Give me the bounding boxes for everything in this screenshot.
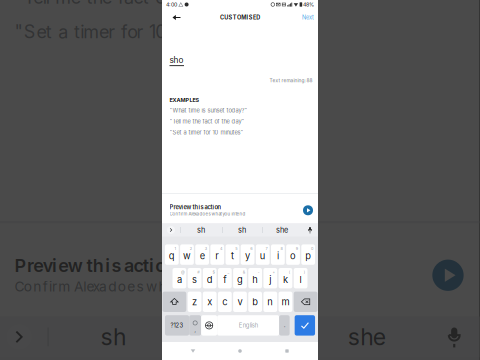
button[interactable]: 3 <box>195 244 209 265</box>
button[interactable]: - <box>248 268 262 288</box>
staticText: b <box>252 296 258 307</box>
staticText: x <box>207 296 212 307</box>
staticText: she <box>276 226 288 234</box>
button[interactable]: & <box>233 268 247 288</box>
button[interactable]: Back <box>166 9 187 26</box>
button[interactable]: m <box>279 292 292 312</box>
button[interactable]: sh <box>222 223 262 236</box>
staticText: d <box>207 274 213 285</box>
staticText: 5 <box>235 246 237 251</box>
staticText: EXAMPLES <box>169 97 199 103</box>
button[interactable]: n <box>263 292 277 312</box>
staticText: 4:00 <box>166 1 177 8</box>
staticText: ( <box>289 270 290 274</box>
staticText: @ <box>181 270 185 274</box>
button[interactable]: Symbols <box>165 315 189 336</box>
button[interactable]: 4 <box>210 244 224 265</box>
staticText: o <box>290 250 296 262</box>
staticText: w <box>183 250 191 262</box>
staticText: "Tell me the fact of the day" <box>169 118 244 125</box>
staticText: & <box>243 270 245 274</box>
staticText: 3 <box>205 246 207 251</box>
staticText: j <box>269 274 271 285</box>
button[interactable]: Next <box>294 9 314 26</box>
staticText: s <box>192 274 197 285</box>
button[interactable]: # <box>188 268 201 288</box>
staticText: a <box>177 274 182 285</box>
staticText: Preview this action <box>169 204 221 211</box>
staticText: c <box>222 296 227 307</box>
button[interactable]: . <box>279 315 290 336</box>
button[interactable]: + <box>263 268 277 288</box>
button[interactable]: Voice input <box>302 223 318 236</box>
button[interactable]: Recent apps <box>271 342 303 360</box>
staticText: _ <box>228 270 230 274</box>
staticText: t <box>231 250 234 262</box>
staticText: u <box>260 250 266 262</box>
button[interactable]: $ <box>203 268 217 288</box>
staticText: sho <box>169 55 183 65</box>
button[interactable]: Home <box>224 342 256 360</box>
button[interactable]: Emoji and comma <box>189 315 201 336</box>
staticText: y <box>245 250 250 262</box>
button[interactable]: @ <box>172 268 186 288</box>
staticText: ) <box>304 270 305 274</box>
button[interactable]: Change language <box>201 315 217 336</box>
staticText: , <box>194 325 196 333</box>
staticText: 9 <box>296 246 298 251</box>
staticText: 7 <box>265 246 267 251</box>
staticText: g <box>237 274 243 285</box>
staticText: sh <box>197 226 205 234</box>
button[interactable]: z <box>188 292 201 312</box>
button[interactable]: she <box>262 223 302 236</box>
staticText: f <box>223 274 226 285</box>
button[interactable]: 5 <box>225 244 239 265</box>
staticText: m <box>281 296 289 307</box>
staticText: v <box>237 296 242 307</box>
staticText: 0 <box>311 246 313 251</box>
button[interactable]: ( <box>279 268 292 288</box>
staticText: "Set a timer for 10 minutes" <box>169 129 243 136</box>
staticText: ?123 <box>170 322 183 329</box>
staticText: p <box>305 250 311 262</box>
button[interactable]: Enter <box>295 315 315 336</box>
button[interactable]: 0 <box>301 244 315 265</box>
button[interactable]: 8 <box>271 244 285 265</box>
staticText: e <box>200 250 205 262</box>
staticText: i <box>277 250 279 262</box>
staticText: 8 <box>281 246 283 251</box>
button[interactable]: _ <box>218 268 232 288</box>
staticText: k <box>283 274 288 285</box>
button[interactable]: Backspace <box>294 292 317 312</box>
staticText: # <box>197 270 199 274</box>
button[interactable]: Space <box>217 315 279 336</box>
button[interactable]: x <box>203 292 217 312</box>
button[interactable]: sh <box>180 223 222 236</box>
staticText: "What time is sunset today?" <box>169 107 247 114</box>
staticText: Text remaining: 88 <box>269 78 312 83</box>
button[interactable]: c <box>218 292 232 312</box>
staticText: h <box>252 274 258 285</box>
staticText: sh <box>238 226 246 234</box>
button[interactable]: v <box>233 292 247 312</box>
staticText: n <box>267 296 273 307</box>
staticText: 6 <box>250 246 252 251</box>
staticText: 2 <box>190 246 192 251</box>
staticText: $ <box>212 270 214 274</box>
button[interactable]: 2 <box>180 244 194 265</box>
button[interactable]: Shift <box>162 292 186 312</box>
button[interactable]: More suggestions <box>162 223 180 236</box>
button[interactable]: b <box>248 292 262 312</box>
button[interactable]: 9 <box>286 244 300 265</box>
staticText: l <box>300 274 302 285</box>
button[interactable]: 7 <box>256 244 270 265</box>
staticText: Confirm Alexa does what you intend <box>169 211 245 216</box>
staticText: 48% <box>303 1 314 8</box>
button[interactable]: ) <box>294 268 307 288</box>
button[interactable]: 1 <box>165 244 179 265</box>
button[interactable]: Preview this action <box>162 194 318 223</box>
staticText: CUSTOMISED <box>220 14 260 21</box>
button[interactable]: Back <box>177 342 209 360</box>
button[interactable]: 6 <box>241 244 254 265</box>
staticText: q <box>169 250 175 262</box>
